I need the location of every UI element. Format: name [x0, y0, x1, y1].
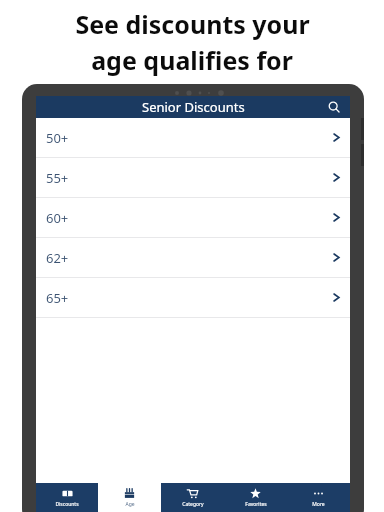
button[interactable]: 60+: [36, 198, 350, 238]
button[interactable]: Age: [98, 483, 161, 512]
button[interactable]: 50+: [36, 118, 350, 158]
staticText: 62+: [46, 249, 69, 267]
staticText: 55+: [46, 169, 69, 187]
button[interactable]: Search: [324, 97, 344, 117]
staticText: Age: [125, 501, 135, 508]
staticText: age qualifies for: [91, 43, 293, 77]
button[interactable]: 55+: [36, 158, 350, 198]
staticText: Senior Discounts: [142, 98, 245, 116]
staticText: 50+: [46, 129, 69, 147]
button[interactable]: Discounts: [36, 483, 98, 512]
staticText: Category: [182, 501, 204, 508]
button[interactable]: 62+: [36, 238, 350, 278]
button[interactable]: More: [287, 483, 350, 512]
staticText: Favorites: [245, 501, 267, 508]
staticText: See discounts your: [75, 7, 310, 41]
staticText: More: [312, 501, 325, 508]
staticText: Discounts: [55, 501, 79, 508]
button[interactable]: Favorites: [224, 483, 287, 512]
staticText: 65+: [46, 289, 69, 307]
staticText: 60+: [46, 209, 69, 227]
button[interactable]: Category: [161, 483, 224, 512]
button[interactable]: 65+: [36, 278, 350, 318]
